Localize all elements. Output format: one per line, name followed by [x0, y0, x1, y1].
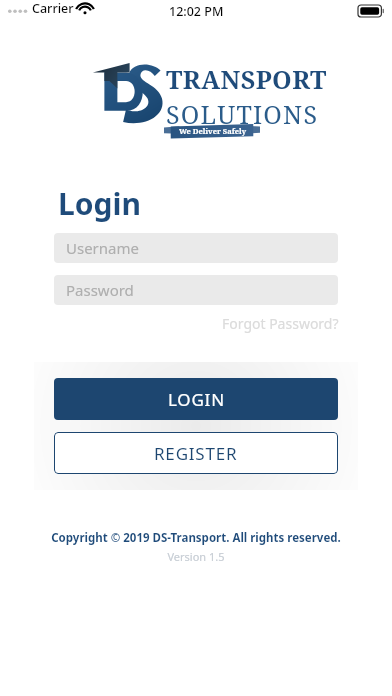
button[interactable]: LOGIN: [54, 378, 338, 420]
staticText: TRANSPORT: [166, 62, 327, 96]
staticText: LOGIN: [168, 388, 225, 411]
button[interactable]: Forgot Password?: [218, 312, 343, 335]
staticText: Carrier: [32, 0, 74, 17]
staticText: 12:02 PM: [169, 3, 224, 20]
staticText: Copyright © 2019 DS-Transport. All right…: [51, 530, 341, 546]
staticText: We Deliver Safely: [179, 126, 246, 136]
button[interactable]: Password: [54, 275, 338, 305]
staticText: SOLUTIONS: [166, 97, 319, 131]
staticText: REGISTER: [154, 442, 238, 465]
staticText: Forgot Password?: [222, 314, 339, 333]
staticText: Username: [66, 238, 139, 258]
staticText: Version 1.5: [167, 549, 225, 564]
staticText: Password: [66, 280, 134, 300]
button[interactable]: Username: [54, 233, 338, 263]
staticText: Login: [58, 183, 141, 224]
button[interactable]: REGISTER: [54, 432, 338, 474]
